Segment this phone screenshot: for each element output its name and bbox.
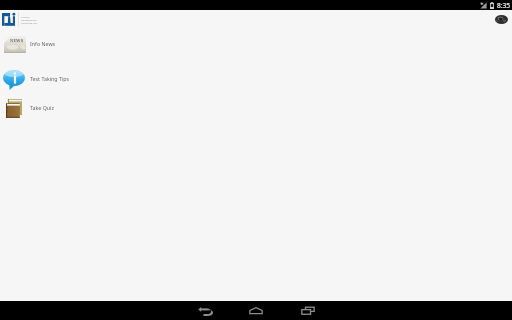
- button[interactable]: Recent apps: [283, 301, 333, 320]
- staticText: Info News: [30, 40, 56, 47]
- button[interactable]: Settings: [495, 15, 508, 24]
- staticText: NASSAU: [21, 16, 30, 19]
- staticText: INFORMATION: [21, 19, 37, 22]
- staticText: Test Taking Tips: [30, 75, 70, 82]
- button[interactable]: Test Taking Tips: [0, 66, 512, 93]
- staticText: NEWS: [10, 37, 24, 43]
- staticText: Take Quiz: [30, 104, 54, 111]
- button[interactable]: Home: [231, 301, 281, 320]
- staticText: INSTITUTE INC.: [21, 22, 38, 25]
- button[interactable]: Back: [179, 301, 229, 320]
- staticText: 8:35: [497, 1, 511, 10]
- button[interactable]: Take Quiz: [0, 95, 512, 122]
- button[interactable]: NEWS: [0, 31, 512, 57]
